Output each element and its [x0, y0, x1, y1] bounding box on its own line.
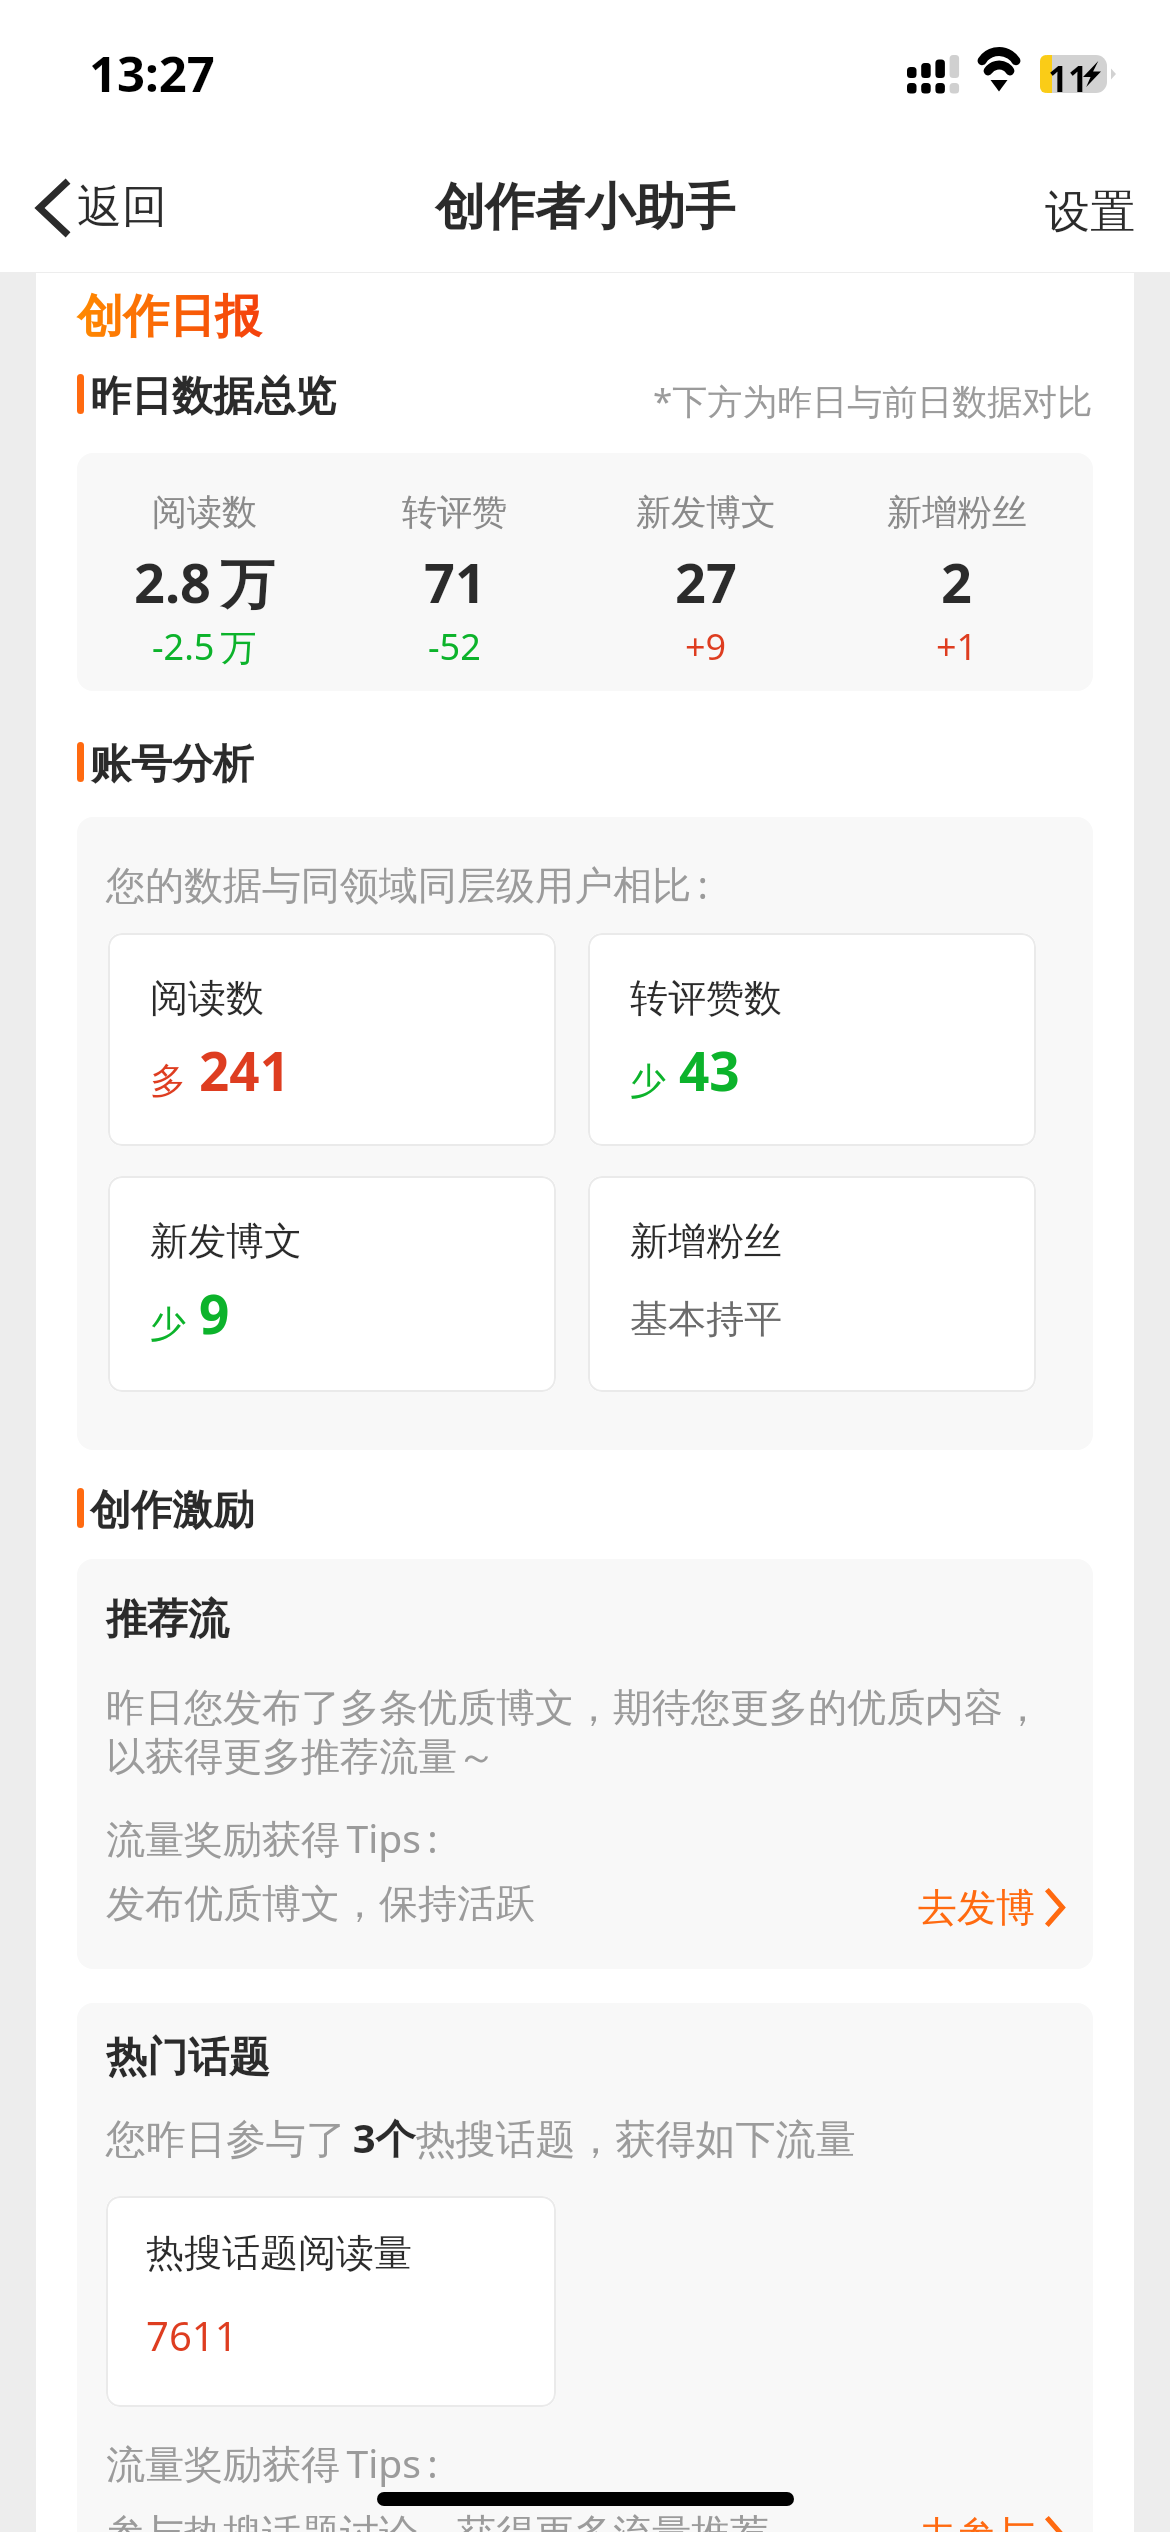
staticText: 热搜话题阅读量 [146, 2229, 412, 2277]
staticText: 昨日数据总览 [90, 371, 336, 423]
button[interactable]: 新发博文 [580, 453, 831, 691]
button[interactable]: 新增粉丝 [588, 1176, 1036, 1392]
staticText: 您的数据与同领域同层级用户相比 : [106, 857, 708, 910]
staticText: 2 [941, 545, 972, 619]
button[interactable]: 新增粉丝 [831, 453, 1082, 691]
button[interactable]: 阅读数 [108, 933, 556, 1146]
staticText: 71 [424, 545, 486, 619]
staticText: +9 [685, 622, 727, 671]
button[interactable]: 转评赞数 [588, 933, 1036, 1146]
staticText: 2.8 万 [134, 545, 274, 619]
staticText: 创作激励 [90, 1485, 254, 1537]
staticText: -2.5 万 [152, 622, 257, 671]
staticText: 设置 [1045, 184, 1135, 241]
staticText: 去参与 [918, 2511, 1035, 2532]
staticText: 基本持平 [630, 1295, 782, 1343]
staticText: 转评赞 [402, 490, 507, 534]
staticText: 去发博 [918, 1883, 1035, 1932]
staticText: 发布优质博文，保持活跃 [106, 1879, 535, 1928]
staticText: 返回 [77, 179, 167, 236]
staticText: 账号分析 [90, 739, 254, 791]
staticText: 流量奖励获得 Tips : [106, 1811, 438, 1864]
staticText: 241 [199, 1034, 290, 1106]
staticText: 昨日您发布了多条优质博文，期待您更多的优质内容，以获得更多推荐流量～ [106, 1683, 1056, 1781]
button[interactable]: 去参与 [902, 2505, 1093, 2532]
staticText: 阅读数 [152, 490, 257, 534]
staticText: 您昨日参与了 3个热搜话题，获得如下流量 [106, 2110, 856, 2165]
staticText: 新发博文 [150, 1217, 302, 1265]
button[interactable]: 转评赞 [329, 453, 580, 691]
staticText: 多 [150, 1058, 186, 1103]
staticText: *下方为昨日与前日数据对比 [653, 377, 1093, 425]
staticText: 热门话题 [106, 2032, 270, 2084]
button[interactable]: 去发博 [902, 1877, 1093, 1938]
staticText: 新增粉丝 [630, 1217, 782, 1265]
button[interactable]: 阅读数 [79, 453, 329, 691]
staticText: 创作日报 [77, 288, 261, 346]
button[interactable]: 新发博文 [108, 1176, 556, 1392]
button[interactable]: 返回 [0, 171, 191, 244]
staticText: 新增粉丝 [887, 490, 1027, 534]
staticText: 流量奖励获得 Tips : [106, 2436, 438, 2489]
staticText: 9 [199, 1277, 230, 1349]
staticText: -52 [428, 622, 481, 671]
staticText: 少 [150, 1301, 186, 1346]
staticText: 少 [630, 1058, 666, 1103]
button[interactable]: 热搜话题阅读量 [106, 2196, 556, 2407]
staticText: 转评赞数 [630, 974, 782, 1022]
button[interactable]: 设置 [1021, 176, 1170, 249]
staticText: 推荐流 [106, 1594, 229, 1646]
staticText: 阅读数 [150, 974, 264, 1022]
staticText: 参与热搜话题讨论，获得更多流量推荐 [106, 2509, 769, 2532]
staticText: 27 [675, 545, 737, 619]
staticText: 7611 [146, 2308, 238, 2362]
staticText: 13:27 [89, 40, 215, 107]
staticText: 11 [1048, 55, 1089, 93]
staticText: 43 [679, 1034, 740, 1106]
staticText: 创作者小助手 [435, 176, 735, 239]
staticText: 新发博文 [636, 490, 776, 534]
staticText: +1 [936, 622, 978, 671]
